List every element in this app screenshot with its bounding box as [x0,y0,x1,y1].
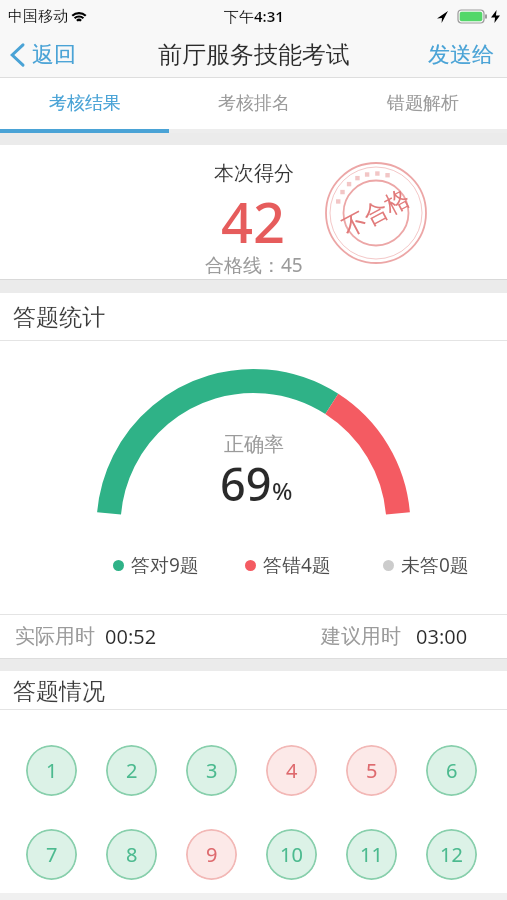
button[interactable]: 2 [106,745,157,796]
staticText: 69 [220,453,272,514]
staticText: 考核结果 [49,92,121,115]
staticText: 不合格 [337,183,415,243]
staticText: 10 [280,841,303,868]
button[interactable]: 12 [426,829,477,880]
button[interactable]: 11 [346,829,397,880]
staticText: 9 [206,841,218,868]
staticText: 前厅服务技能考试 [158,40,350,70]
button[interactable]: 9 [186,829,237,880]
staticText: 正确率 [224,432,284,457]
staticText: 答题情况 [13,677,105,706]
button[interactable]: 10 [266,829,317,880]
staticText: 11 [360,841,383,868]
staticText: 6 [446,757,458,784]
staticText: 未答0题 [401,552,469,578]
staticText: % [272,474,293,507]
staticText: 03:00 [416,623,468,650]
button[interactable]: 返回 [10,41,76,69]
staticText: 发送给 [428,41,494,69]
staticText: 12 [440,841,463,868]
staticText: 下午4:31 [224,6,284,26]
staticText: 返回 [32,41,76,69]
button[interactable]: 4 [266,745,317,796]
staticText: 8 [126,841,138,868]
staticText: 错题解析 [387,92,459,115]
staticText: 答题统计 [13,303,105,332]
staticText: 中国移动 [8,7,68,26]
staticText: 3 [206,757,218,784]
button[interactable]: 6 [426,745,477,796]
staticText: 5 [366,757,378,784]
button[interactable]: 错题解析 [338,78,507,129]
button[interactable]: 考核结果 [0,78,169,129]
button[interactable]: 8 [106,829,157,880]
staticText: 42 [221,183,286,259]
staticText: 建议用时 [321,624,401,649]
staticText: 实际用时 [15,624,95,649]
staticText: 00:52 [105,623,157,650]
button[interactable]: 5 [346,745,397,796]
staticText: 本次得分 [214,161,294,186]
staticText: 1 [46,757,58,784]
staticText: 答对9题 [131,552,199,578]
staticText: 考核排名 [218,92,290,115]
staticText: 答错4题 [263,552,331,578]
staticText: 4 [286,757,298,784]
staticText: 7 [46,841,58,868]
button[interactable]: 考核排名 [169,78,338,129]
button[interactable]: 1 [26,745,77,796]
staticText: 2 [126,757,138,784]
button[interactable]: 发送给 [428,41,494,69]
staticText: 合格线：45 [205,252,303,278]
button[interactable]: 3 [186,745,237,796]
button[interactable]: 7 [26,829,77,880]
